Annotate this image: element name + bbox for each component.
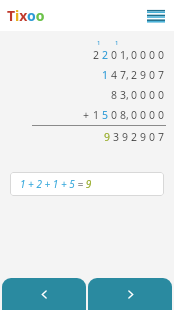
staticText: 9: [140, 130, 147, 144]
staticText: 9: [122, 130, 129, 144]
staticText: 0: [111, 48, 118, 62]
button[interactable]: Menu: [143, 3, 169, 29]
staticText: 3: [113, 130, 120, 144]
staticText: 0: [140, 48, 147, 62]
staticText: +: [83, 108, 90, 122]
button[interactable]: Tixoo: [7, 6, 45, 25]
staticText: 2: [93, 48, 100, 62]
staticText: 2: [131, 130, 138, 144]
staticText: 0: [149, 68, 156, 82]
staticText: 9: [104, 130, 111, 144]
staticText: 2: [102, 48, 109, 62]
staticText: 1: [102, 68, 109, 82]
staticText: 3,: [120, 88, 129, 102]
button[interactable]: Previous: [2, 278, 86, 310]
staticText: 7: [158, 130, 165, 144]
staticText: 2: [131, 68, 138, 82]
staticText: 0: [131, 108, 138, 122]
staticText: 1 + 2 + 1 + 5 = 9: [20, 177, 92, 191]
staticText: 0: [131, 48, 138, 62]
staticText: 0: [111, 108, 118, 122]
staticText: 9: [140, 68, 147, 82]
staticText: 0: [149, 108, 156, 122]
button[interactable]: 1 + 2 + 1 + 5 = 9: [10, 172, 164, 196]
staticText: 1: [97, 39, 101, 47]
staticText: 0: [158, 88, 165, 102]
button[interactable]: Next: [88, 278, 172, 310]
staticText: 0: [149, 130, 156, 144]
staticText: 1,: [120, 48, 129, 62]
staticText: 0: [158, 108, 165, 122]
staticText: 8: [111, 88, 118, 102]
staticText: 0: [149, 88, 156, 102]
staticText: 8,: [120, 108, 129, 122]
staticText: 5: [102, 108, 109, 122]
staticText: Tixoo: [7, 6, 45, 25]
staticText: 4: [111, 68, 118, 82]
staticText: 1: [115, 39, 119, 47]
staticText: 7,: [120, 68, 129, 82]
staticText: 0: [140, 88, 147, 102]
staticText: 0: [149, 48, 156, 62]
staticText: 0: [140, 108, 147, 122]
staticText: 7: [158, 68, 165, 82]
staticText: 1: [93, 108, 100, 122]
staticText: 0: [158, 48, 165, 62]
staticText: 0: [131, 88, 138, 102]
